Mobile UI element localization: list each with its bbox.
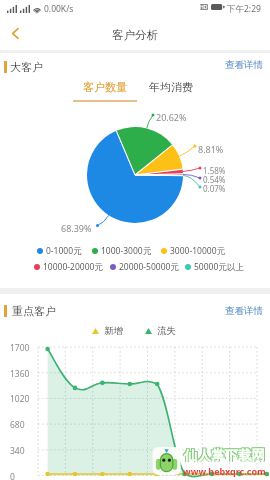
staticText: 下午2:29 bbox=[227, 3, 261, 15]
staticText: 3000-10000元 bbox=[170, 245, 225, 257]
staticText: 10000-20000元 bbox=[43, 261, 103, 273]
staticText: 重点客户 bbox=[12, 304, 56, 318]
button[interactable]: 客户数量 bbox=[73, 77, 137, 102]
staticText: www.hebxqrc.com bbox=[183, 465, 266, 477]
staticText: 客户分析 bbox=[112, 28, 158, 42]
staticText: 68.39% bbox=[61, 222, 92, 234]
staticText: 查看详情 bbox=[225, 305, 263, 317]
button[interactable]: 年均消费 bbox=[139, 77, 203, 102]
staticText: 1000-3000元 bbox=[101, 245, 152, 257]
staticText: 1020 bbox=[10, 393, 30, 405]
staticText: 340 bbox=[10, 445, 25, 457]
staticText: 20000-50000元 bbox=[119, 261, 179, 273]
staticText: 0.00K/s bbox=[44, 3, 74, 15]
staticText: 0-1000元 bbox=[46, 245, 82, 257]
staticText: 1360 bbox=[10, 368, 30, 380]
staticText: 客户数量 bbox=[83, 80, 127, 94]
staticText: 1700 bbox=[10, 342, 30, 354]
button[interactable]: 返回 bbox=[0, 18, 30, 48]
staticText: 仙人掌下载网 bbox=[185, 447, 266, 464]
staticText: 0 bbox=[10, 471, 15, 480]
staticText: 20.62% bbox=[156, 111, 187, 123]
staticText: 仙人掌下载网 bbox=[183, 447, 264, 464]
button[interactable]: 查看详情 bbox=[219, 301, 269, 320]
staticText: 0.07% bbox=[203, 183, 226, 194]
staticText: 仙人掌下载网 bbox=[183, 446, 264, 463]
staticText: 1.58% bbox=[203, 165, 226, 176]
staticText: 8.81% bbox=[198, 143, 224, 155]
staticText: 查看详情 bbox=[225, 59, 263, 71]
staticText: 680 bbox=[10, 419, 25, 431]
staticText: 年均消费 bbox=[149, 80, 193, 94]
staticText: 仙人掌下载网 bbox=[184, 447, 265, 464]
staticText: 50000元以上 bbox=[194, 261, 244, 273]
staticText: 流失 bbox=[157, 325, 176, 337]
staticText: 仙人掌下载网 bbox=[185, 446, 266, 463]
button[interactable]: 查看详情 bbox=[219, 55, 269, 74]
staticText: 大客户 bbox=[10, 60, 43, 74]
staticText: 0.54% bbox=[203, 174, 226, 185]
staticText: HD bbox=[200, 4, 208, 10]
staticText: 新增 bbox=[104, 325, 123, 337]
